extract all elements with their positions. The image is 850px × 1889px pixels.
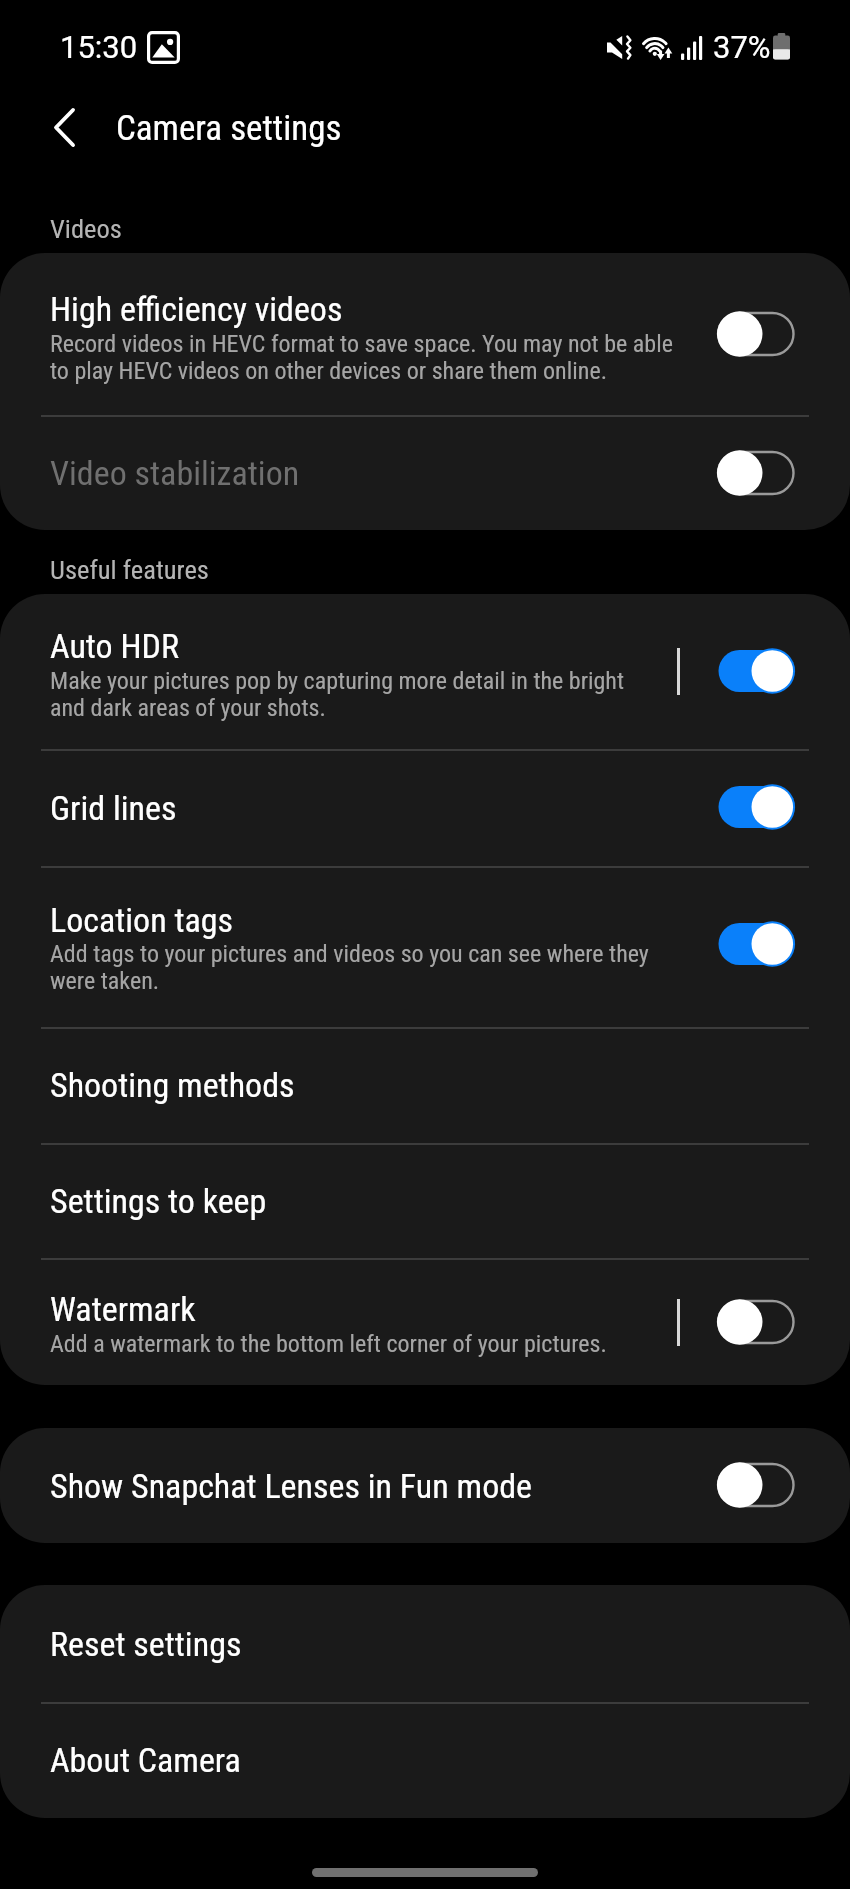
button[interactable]: Reset settings (0, 1585, 850, 1702)
staticText: Useful features (50, 554, 209, 585)
staticText: Video stabilization (50, 453, 300, 493)
staticText: Add tags to your pictures and videos so … (50, 940, 649, 995)
staticText: 37% (713, 29, 771, 65)
staticText: Watermark (50, 1289, 196, 1329)
button[interactable]: Location tags (0, 867, 850, 1027)
staticText: About Camera (50, 1740, 241, 1780)
staticText: Camera settings (116, 108, 342, 149)
button[interactable]: Location tags, on (700, 914, 810, 974)
button[interactable]: Shooting methods (0, 1028, 850, 1143)
button[interactable]: Navigate up (33, 96, 95, 158)
staticText: 15:30 (60, 29, 138, 65)
button[interactable]: Video stabilization, off (700, 443, 810, 503)
staticText: Reset settings (50, 1624, 242, 1664)
button[interactable]: Grid lines, on (700, 777, 810, 837)
button[interactable]: Watermark, off (700, 1292, 810, 1352)
button[interactable]: High efficiency videos, off (700, 304, 810, 364)
staticText: Record videos in HEVC format to save spa… (50, 330, 673, 385)
staticText: Add a watermark to the bottom left corne… (50, 1330, 607, 1358)
button[interactable]: About Camera (0, 1703, 850, 1818)
button[interactable]: Auto HDR (0, 594, 850, 750)
staticText: Make your pictures pop by capturing more… (50, 667, 625, 722)
staticText: Shooting methods (50, 1065, 295, 1105)
staticText: High efficiency videos (50, 289, 343, 329)
button[interactable]: Grid lines (0, 750, 850, 866)
staticText: Grid lines (50, 788, 177, 828)
button[interactable]: Auto HDR, on (700, 641, 810, 701)
staticText: Show Snapchat Lenses in Fun mode (50, 1466, 533, 1506)
button[interactable]: Show Snapchat Lenses in Fun mode (0, 1428, 850, 1543)
staticText: Videos (50, 213, 122, 244)
staticText: Location tags (50, 900, 234, 940)
button[interactable]: Video stabilization (0, 416, 850, 530)
button[interactable]: High efficiency videos (0, 253, 850, 416)
staticText: Auto HDR (50, 626, 179, 666)
button[interactable]: Show Snapchat Lenses in Fun mode, off (700, 1455, 810, 1515)
button[interactable]: Watermark (0, 1259, 850, 1385)
staticText: Settings to keep (50, 1181, 267, 1221)
button[interactable]: Settings to keep (0, 1144, 850, 1258)
